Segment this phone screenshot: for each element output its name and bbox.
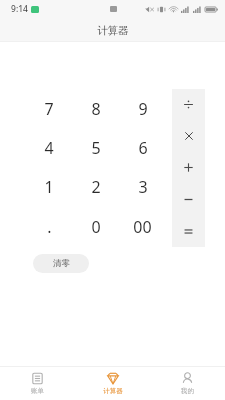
staticText: 4 bbox=[44, 137, 54, 159]
button[interactable] bbox=[172, 215, 205, 247]
button[interactable]: 5 bbox=[72, 128, 119, 167]
button[interactable]: 账单 bbox=[0, 367, 75, 400]
button[interactable] bbox=[172, 183, 205, 215]
staticText: 7 bbox=[44, 98, 54, 120]
button[interactable]: . bbox=[26, 207, 72, 247]
staticText: 2 bbox=[91, 176, 101, 198]
button[interactable] bbox=[172, 120, 205, 151]
button[interactable]: 2 bbox=[72, 167, 119, 207]
button[interactable]: 4 bbox=[26, 128, 72, 167]
staticText: 5 bbox=[91, 137, 101, 159]
button[interactable]: 清零 bbox=[33, 254, 89, 273]
button[interactable]: 00 bbox=[119, 207, 166, 247]
staticText: 我的 bbox=[181, 387, 194, 395]
staticText: 8 bbox=[91, 98, 101, 120]
staticText: . bbox=[47, 216, 52, 238]
button[interactable]: 9 bbox=[119, 89, 166, 128]
staticText: 00 bbox=[133, 216, 152, 238]
button[interactable] bbox=[172, 89, 205, 120]
staticText: 清零 bbox=[53, 258, 70, 269]
button[interactable] bbox=[172, 151, 205, 183]
staticText: 3 bbox=[138, 176, 148, 198]
button[interactable]: 8 bbox=[72, 89, 119, 128]
staticText: 9:14 bbox=[11, 3, 28, 15]
staticText: 9 bbox=[138, 98, 148, 120]
button[interactable]: 3 bbox=[119, 167, 166, 207]
staticText: 0 bbox=[91, 216, 101, 238]
staticText: 1 bbox=[44, 176, 54, 198]
button[interactable]: 我的 bbox=[150, 367, 225, 400]
button[interactable]: 0 bbox=[72, 207, 119, 247]
other: 账单 bbox=[31, 372, 44, 385]
button[interactable]: 7 bbox=[26, 89, 72, 128]
staticText: 6 bbox=[138, 137, 148, 159]
button[interactable]: 计算器 bbox=[75, 367, 150, 400]
staticText: 计算器 bbox=[103, 387, 123, 395]
staticText: 计算器 bbox=[97, 24, 129, 37]
other: 我的 bbox=[181, 372, 194, 385]
button[interactable]: 1 bbox=[26, 167, 72, 207]
button[interactable]: 6 bbox=[119, 128, 166, 167]
other: 计算器 bbox=[106, 372, 120, 385]
staticText: 账单 bbox=[31, 387, 44, 395]
